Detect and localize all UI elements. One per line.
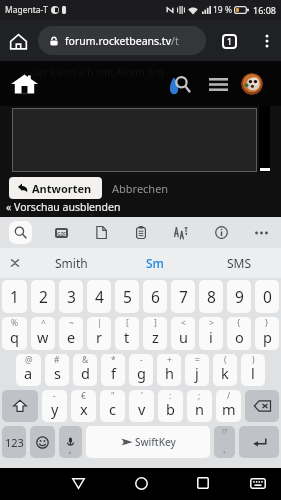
button[interactable]: shift <box>2 390 38 422</box>
staticText: e <box>67 327 76 347</box>
button[interactable]: info <box>210 221 232 244</box>
button[interactable]: Tabs <box>214 26 244 56</box>
staticText: q <box>10 327 19 347</box>
button[interactable]: 5 <box>115 280 139 313</box>
button[interactable]: 6 <box>143 280 167 313</box>
button[interactable]: gif <box>50 221 72 244</box>
button[interactable]: enter <box>239 426 279 458</box>
staticText: + <box>167 354 172 366</box>
button[interactable]: Antworten <box>9 177 102 199</box>
staticText: n <box>195 399 204 419</box>
button[interactable]: € <box>71 390 96 422</box>
button[interactable]: 7 <box>171 280 195 313</box>
button[interactable]: > <box>199 317 223 350</box>
button[interactable]: @ <box>16 354 41 386</box>
button[interactable]: sticker <box>90 221 112 244</box>
button[interactable]: % <box>2 317 27 350</box>
button[interactable]: - <box>42 390 67 422</box>
button[interactable]: - <box>129 354 153 386</box>
staticText: w <box>37 327 49 347</box>
button[interactable]: Home <box>119 468 163 498</box>
staticText: { <box>237 317 241 329</box>
button[interactable]: { <box>227 317 251 350</box>
button[interactable]: search <box>9 221 32 244</box>
button[interactable]: mic <box>59 426 82 458</box>
button[interactable]: 8 <box>199 280 223 313</box>
button[interactable]: } <box>255 317 279 350</box>
staticText: 2 <box>39 286 48 307</box>
button[interactable]: « Vorschau ausblenden <box>6 200 121 214</box>
staticText: * <box>111 354 116 366</box>
staticText: % <box>11 317 19 329</box>
staticText: 19 % <box>213 4 232 16</box>
button[interactable]: emoji <box>30 426 55 458</box>
button[interactable]: clip <box>130 221 152 244</box>
button[interactable]: trans <box>170 221 192 244</box>
button[interactable]: Home <box>0 23 36 59</box>
staticText: " <box>111 390 115 402</box>
button[interactable]: More options <box>253 27 281 55</box>
staticText: : <box>169 390 172 402</box>
button[interactable]: ~ <box>59 317 83 350</box>
button[interactable]: 123 <box>2 426 26 458</box>
button[interactable]: ^ <box>31 317 55 350</box>
button[interactable]: Search <box>166 70 194 98</box>
button[interactable]: 4 <box>87 280 111 313</box>
button[interactable]: = <box>185 354 209 386</box>
button[interactable]: [ <box>115 317 139 350</box>
staticText: ) <box>252 354 255 366</box>
button[interactable]: Abbrechen <box>112 177 169 199</box>
button[interactable]: ] <box>143 317 167 350</box>
button[interactable]: 9 <box>227 280 251 313</box>
staticText: 1 <box>10 286 19 307</box>
button[interactable]: ' <box>129 390 154 422</box>
button[interactable]: Recent apps <box>181 468 225 498</box>
button[interactable]: 1 <box>2 280 27 313</box>
staticText: 123 <box>5 435 24 450</box>
button[interactable]: space <box>86 426 210 458</box>
button[interactable]: punct <box>214 426 235 458</box>
staticText: k <box>221 363 229 383</box>
button[interactable]: 2 <box>31 280 55 313</box>
button[interactable]: ) <box>241 354 265 386</box>
staticText: 0 <box>263 286 272 307</box>
staticText: } <box>265 317 269 329</box>
button[interactable]: " <box>100 390 125 422</box>
button[interactable]: back <box>245 390 279 422</box>
button[interactable]: : <box>158 390 183 422</box>
staticText: l <box>251 363 255 383</box>
button[interactable]: * <box>101 354 125 386</box>
button[interactable]: + <box>157 354 181 386</box>
staticText: ' <box>141 390 143 402</box>
button[interactable]: 0 <box>255 280 279 313</box>
button[interactable]: Site home <box>8 70 40 98</box>
button[interactable]: 3 <box>59 280 83 313</box>
button[interactable]: < <box>171 317 195 350</box>
staticText: u <box>179 327 188 347</box>
button[interactable]: Close suggestions <box>0 248 30 278</box>
button[interactable]: Profile <box>241 73 263 95</box>
staticText: der kann ich mit Kevin Sm <box>30 64 164 79</box>
button[interactable]: forum.rocketbeans.tv <box>38 26 206 55</box>
button[interactable]: Back <box>56 468 100 498</box>
button[interactable]: / <box>216 390 241 422</box>
button[interactable]: & <box>73 354 97 386</box>
button[interactable]: more <box>250 221 272 244</box>
staticText: !? <box>222 427 227 437</box>
staticText: 16:08 <box>253 4 277 16</box>
button[interactable]: ( <box>213 354 237 386</box>
staticText: f <box>111 363 116 383</box>
staticText: p <box>263 327 272 347</box>
button[interactable]: SMS <box>197 248 281 278</box>
button[interactable]: Menu <box>204 70 232 98</box>
staticText: y <box>51 399 59 419</box>
button[interactable]: Sm <box>113 248 197 278</box>
button[interactable]: Smith <box>30 248 113 278</box>
button[interactable]: # <box>45 354 69 386</box>
button[interactable]: Keyboard <box>236 468 280 498</box>
staticText: - <box>140 354 143 366</box>
staticText: g <box>137 363 146 383</box>
button[interactable]: | <box>87 317 111 350</box>
staticText: = <box>195 354 200 366</box>
button[interactable]: ; <box>187 390 212 422</box>
